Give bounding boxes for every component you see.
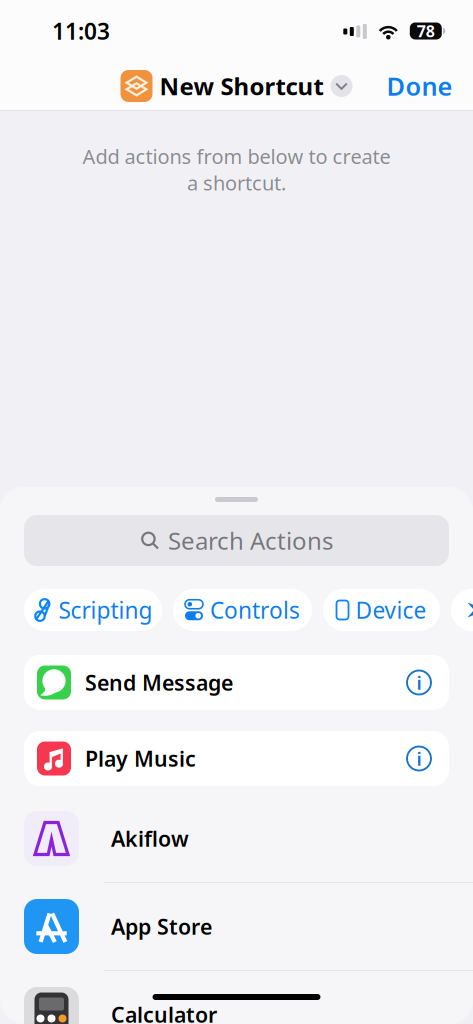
button[interactable]: Play Music	[24, 731, 449, 786]
staticText: i	[416, 670, 421, 695]
staticText: Akiflow	[111, 824, 189, 853]
staticText: Add actions from below to create	[82, 143, 390, 170]
staticText: Calculator	[111, 1000, 217, 1024]
staticText: App Store	[111, 912, 212, 941]
staticText: 78	[417, 20, 435, 42]
staticText: New Shortcut	[159, 70, 323, 102]
button[interactable]: New Shortcut	[120, 64, 352, 108]
button[interactable]: Device	[323, 589, 440, 631]
button[interactable]: Controls	[173, 589, 312, 631]
button[interactable]: App Store	[0, 883, 473, 971]
button[interactable]: Scripting	[24, 589, 162, 631]
button[interactable]: Akiflow	[0, 795, 473, 883]
staticText: i	[416, 746, 421, 771]
button[interactable]: Search Actions	[24, 515, 449, 566]
staticText: Send Message	[85, 668, 233, 697]
staticText: Device	[355, 595, 426, 625]
staticText: 11:03	[52, 16, 110, 46]
button[interactable]: Calculator	[0, 971, 473, 1024]
button[interactable]: Share	[451, 589, 473, 631]
staticText: Search Actions	[168, 525, 333, 556]
staticText: Play Music	[85, 744, 196, 773]
staticText: Scripting	[58, 595, 152, 625]
button[interactable]: Send Message	[24, 655, 449, 710]
staticText: a shortcut.	[187, 170, 286, 196]
button[interactable]: Done	[386, 64, 452, 108]
staticText: Controls	[210, 595, 300, 625]
staticText: Done	[386, 69, 452, 103]
